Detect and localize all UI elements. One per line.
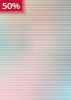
staticText: 50% [2,0,20,12]
button[interactable]: 50% [0,0,26,15]
